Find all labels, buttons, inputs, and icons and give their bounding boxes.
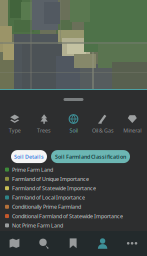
button[interactable]: Soil Farmland Classification [51,150,130,163]
staticText: Mineral [123,127,141,134]
button[interactable]: Search [29,231,59,256]
staticText: Farmland of Local Importance [12,194,85,201]
button[interactable]: Soil Details [11,150,47,163]
button[interactable]: Soil [59,114,88,134]
button[interactable]: Mineral [118,114,147,134]
staticText: Oil & Gas [92,127,114,134]
staticText: Soil Details [14,153,44,160]
button[interactable]: Saved [59,231,88,256]
staticText: Conditionally Prime Farmland [12,203,81,210]
staticText: Type [9,127,21,134]
staticText: Prime Farm Land [12,166,53,173]
button[interactable]: More [118,231,147,256]
staticText: Farmland of Statewide Importance [12,185,96,192]
staticText: Farmland of Unique Importance [12,175,89,182]
staticText: Not Prime Farm Land [12,222,63,229]
button[interactable]: Account [88,231,118,256]
staticText: Soil Farmland Classification [55,153,126,160]
button[interactable]: Map [0,231,29,256]
staticText: Soil [69,127,77,134]
button[interactable]: Trees [29,114,59,134]
button[interactable]: Oil & Gas [88,114,118,134]
staticText: Conditional Farmland of Statewide Import… [12,212,123,220]
staticText: Trees [37,127,51,134]
button[interactable]: Type [0,114,29,134]
